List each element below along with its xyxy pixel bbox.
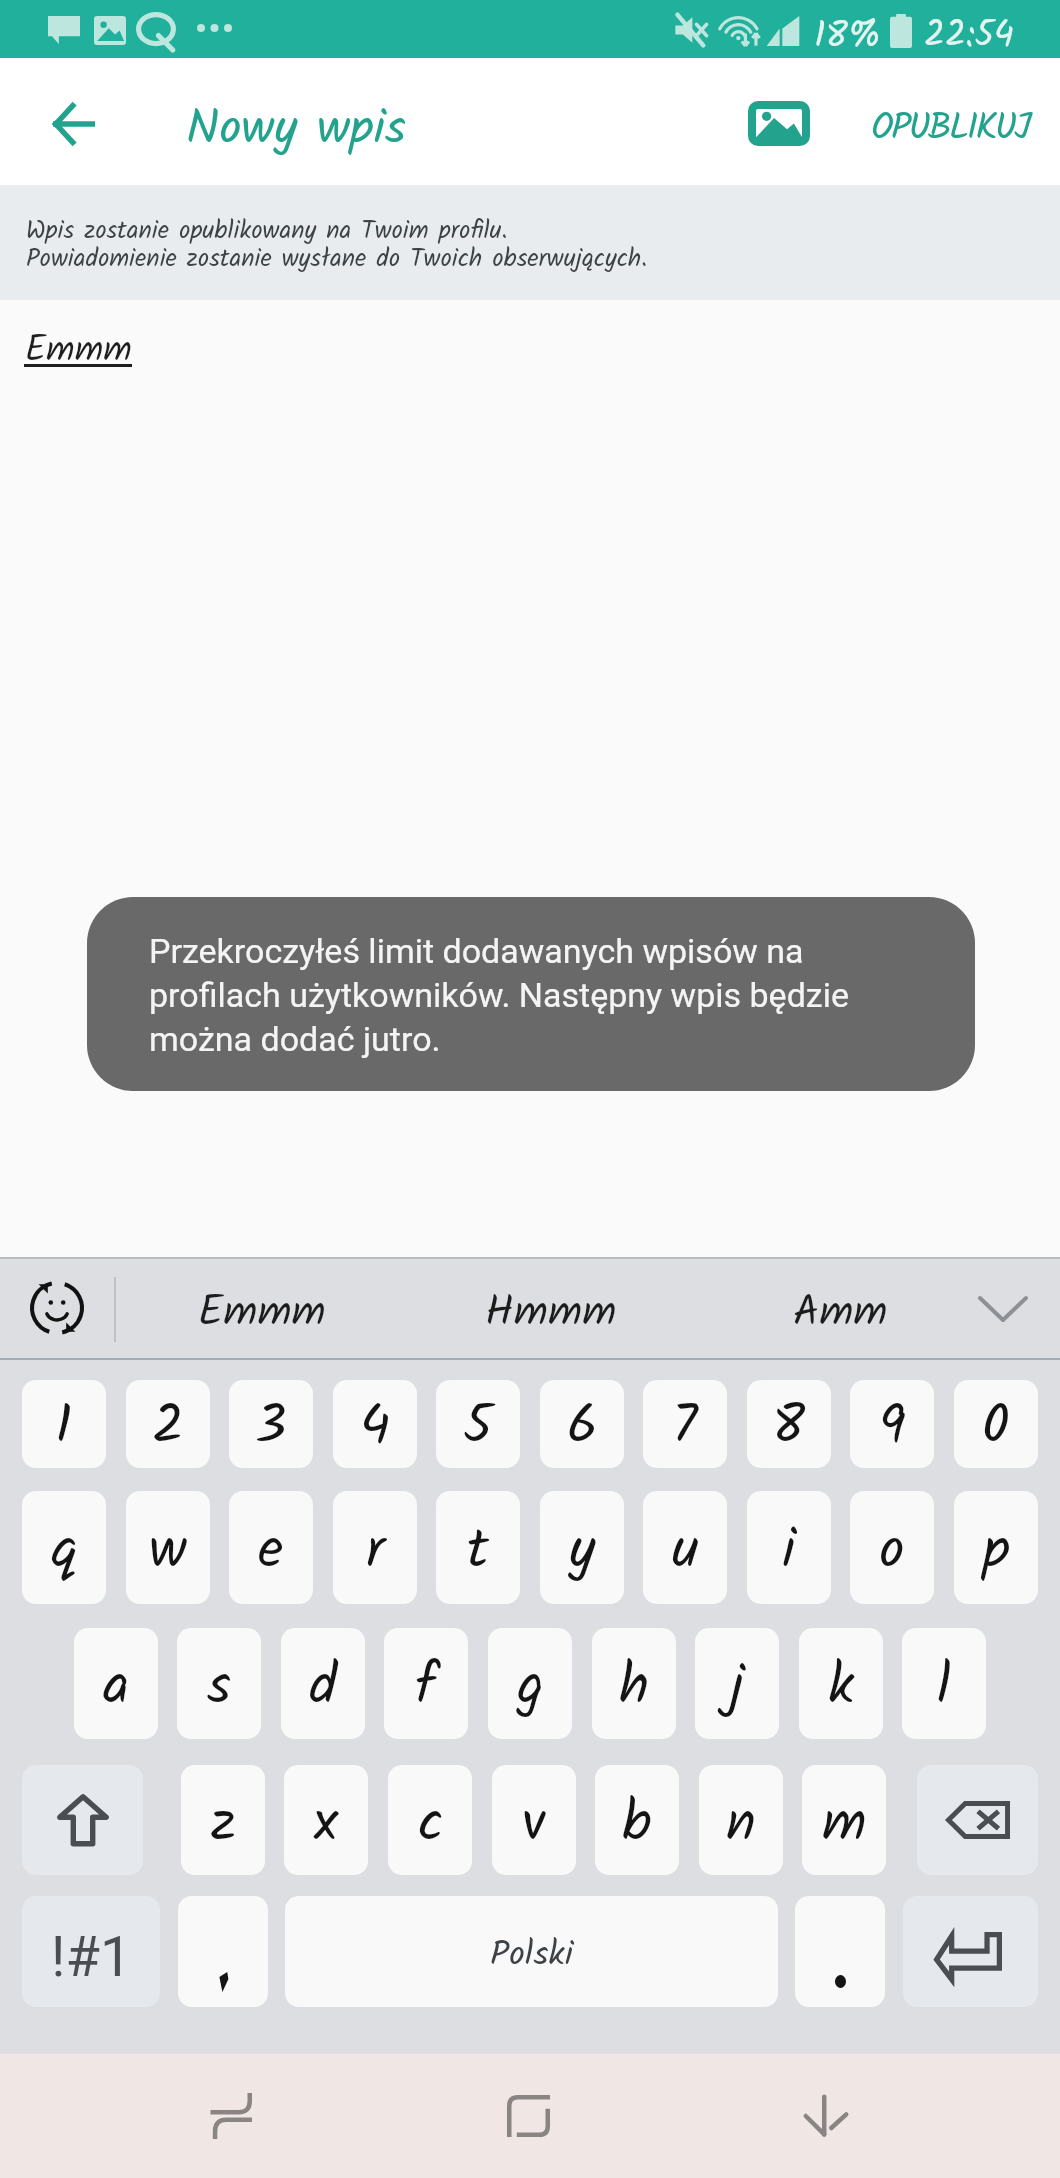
button[interactable]: Home [478,2066,578,2166]
button[interactable]: 0 [954,1380,1038,1468]
button[interactable]: Emmm [127,1257,397,1359]
button[interactable]: Backspace [917,1765,1038,1875]
button[interactable]: 8 [747,1380,831,1468]
staticText: Hmmm [485,1279,617,1348]
button[interactable]: j [695,1628,779,1739]
button[interactable]: r [333,1491,417,1604]
button[interactable]: y [540,1491,624,1604]
staticText: 4 [360,1384,391,1468]
staticText: Emmm [25,323,133,380]
button[interactable]: Hide keyboard [776,2066,876,2166]
button[interactable]: b [595,1765,679,1875]
button[interactable]: l [902,1628,986,1739]
staticText: k [828,1643,855,1732]
staticText: 7 [672,1384,698,1468]
staticText: Przekroczyłeś limit dodawanych wpisów na [149,931,804,971]
staticText: p [983,1507,1010,1596]
button[interactable]: Back [34,84,114,164]
button[interactable]: m [802,1765,886,1875]
button[interactable]: i [747,1491,831,1604]
button[interactable]: 7 [643,1380,727,1468]
button[interactable]: OPUBLIKUJ [855,80,1047,162]
button[interactable]: Recents [182,2066,282,2166]
staticText: 9 [879,1384,906,1468]
staticText: n [726,1780,756,1869]
button[interactable]: w [126,1491,210,1604]
staticText: w [149,1507,187,1596]
staticText: można dodać jutro. [149,1019,441,1059]
button[interactable]: Shift [22,1765,143,1875]
button[interactable]: a [74,1628,158,1739]
button[interactable]: k [799,1628,883,1739]
staticText: r [366,1507,385,1596]
button[interactable]: u [643,1491,727,1604]
staticText: !#1 [51,1924,132,1990]
button[interactable]: d [281,1628,365,1739]
button[interactable]: 3 [229,1380,313,1468]
staticText: f [415,1643,437,1732]
staticText: Nowy wpis [186,91,406,169]
staticText: s [207,1643,231,1732]
button[interactable]: 5 [436,1380,520,1468]
staticText: t [467,1507,489,1596]
staticText: 6 [567,1384,598,1468]
staticText: Wpis zostanie opublikowany na Twoim prof… [26,211,508,251]
button[interactable]: p [954,1491,1038,1604]
staticText: e [258,1507,284,1596]
button[interactable]: q [22,1491,106,1604]
button[interactable]: 1 [22,1380,106,1468]
button[interactable]: 2 [126,1380,210,1468]
button[interactable]: Expand suggestions [965,1271,1041,1347]
staticText: z [211,1780,236,1869]
staticText: 18% [814,8,881,66]
staticText: Amm [793,1279,888,1348]
button[interactable] [795,1896,885,2007]
staticText: Emmm [198,1279,326,1348]
button[interactable]: o [850,1491,934,1604]
button[interactable]: g [488,1628,572,1739]
button[interactable]: Emoji [19,1270,95,1346]
button[interactable]: n [699,1765,783,1875]
staticText: u [672,1507,699,1596]
button[interactable]: s [177,1628,261,1739]
button[interactable]: Amm [705,1257,975,1359]
button[interactable]: !#1 [22,1896,160,2007]
staticText: d [309,1643,337,1732]
staticText: h [619,1643,650,1732]
button[interactable] [178,1896,268,2007]
staticText: c [418,1780,443,1869]
staticText: g [517,1643,544,1732]
staticText: 5 [463,1384,493,1468]
staticText: Powiadomienie zostanie wysłane do Twoich… [26,239,648,279]
button[interactable]: Enter [903,1896,1038,2007]
button[interactable]: Hmmm [416,1257,686,1359]
button[interactable]: 6 [540,1380,624,1468]
button[interactable]: v [492,1765,576,1875]
button[interactable]: x [284,1765,368,1875]
button[interactable]: z [181,1765,265,1875]
staticText: y [569,1507,596,1596]
staticText: a [103,1643,130,1732]
button[interactable]: e [229,1491,313,1604]
staticText: OPUBLIKUJ [871,100,1030,159]
staticText: m [822,1780,867,1869]
button[interactable]: h [592,1628,676,1739]
staticText: 1 [55,1384,73,1468]
staticText: 3 [255,1384,287,1468]
staticText: q [51,1507,78,1596]
button[interactable]: 4 [333,1380,417,1468]
staticText: o [879,1507,905,1596]
staticText: 22:54 [924,8,1014,65]
button[interactable]: Polski [285,1896,778,2007]
button[interactable]: Add image [733,83,823,163]
staticText: 2 [152,1384,184,1468]
staticText: 0 [982,1384,1010,1468]
button[interactable]: f [384,1628,468,1739]
staticText: j [730,1643,745,1732]
button[interactable]: 9 [850,1380,934,1468]
staticText: l [937,1643,951,1732]
staticText: profilach użytkowników. Następny wpis bę… [149,975,849,1015]
button[interactable]: c [388,1765,472,1875]
button[interactable]: t [436,1491,520,1604]
staticText: i [782,1507,796,1596]
